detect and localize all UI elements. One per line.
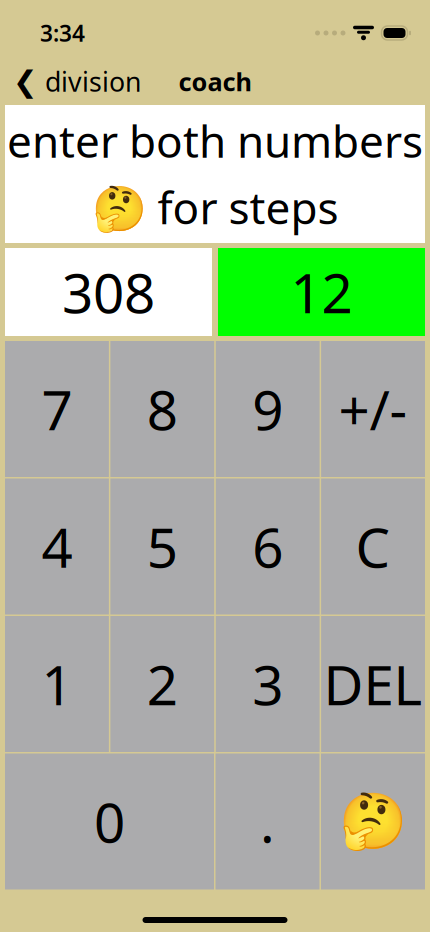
staticText: +/- [339,373,408,445]
staticText: 5 [147,510,178,583]
staticText: enter both numbers [7,112,423,170]
button[interactable]: 1 [5,616,109,752]
staticText: 🤔 [339,790,407,853]
staticText: 1 [41,648,72,720]
staticText: 308 [62,256,155,328]
staticText: division [45,64,141,99]
button[interactable]: Show steps [321,753,425,889]
button[interactable]: 5 [110,478,214,614]
staticText: 0 [94,785,125,858]
button[interactable]: 2 [110,616,214,752]
button[interactable]: 7 [5,341,109,477]
staticText: C [356,510,391,583]
staticText: 🤔 for steps [91,178,338,236]
button[interactable]: +/- [321,341,425,477]
staticText: 12 [290,256,352,328]
staticText: DEL [324,648,423,720]
button[interactable]: 308 [5,248,212,336]
staticText: 8 [147,373,178,445]
staticText: 4 [41,510,72,583]
button[interactable]: 6 [216,478,320,614]
button[interactable]: 4 [5,478,109,614]
staticText: 3 [252,648,283,720]
button[interactable]: DEL [321,616,425,752]
button[interactable]: 8 [110,341,214,477]
staticText: coach [178,65,251,98]
staticText: 6 [252,510,283,583]
staticText: 7 [41,373,72,445]
staticText: ❮ [13,65,38,98]
button[interactable]: 0 [5,753,214,889]
button[interactable]: C [321,478,425,614]
button[interactable]: 3 [216,616,320,752]
button[interactable]: 12 [218,248,425,336]
staticText: 3:34 [40,18,85,48]
button[interactable]: 9 [216,341,320,477]
staticText: 9 [252,373,283,445]
staticText: . [260,785,275,858]
button[interactable]: ❮ [0,57,141,106]
button[interactable]: . [215,753,319,889]
staticText: 2 [147,648,178,720]
